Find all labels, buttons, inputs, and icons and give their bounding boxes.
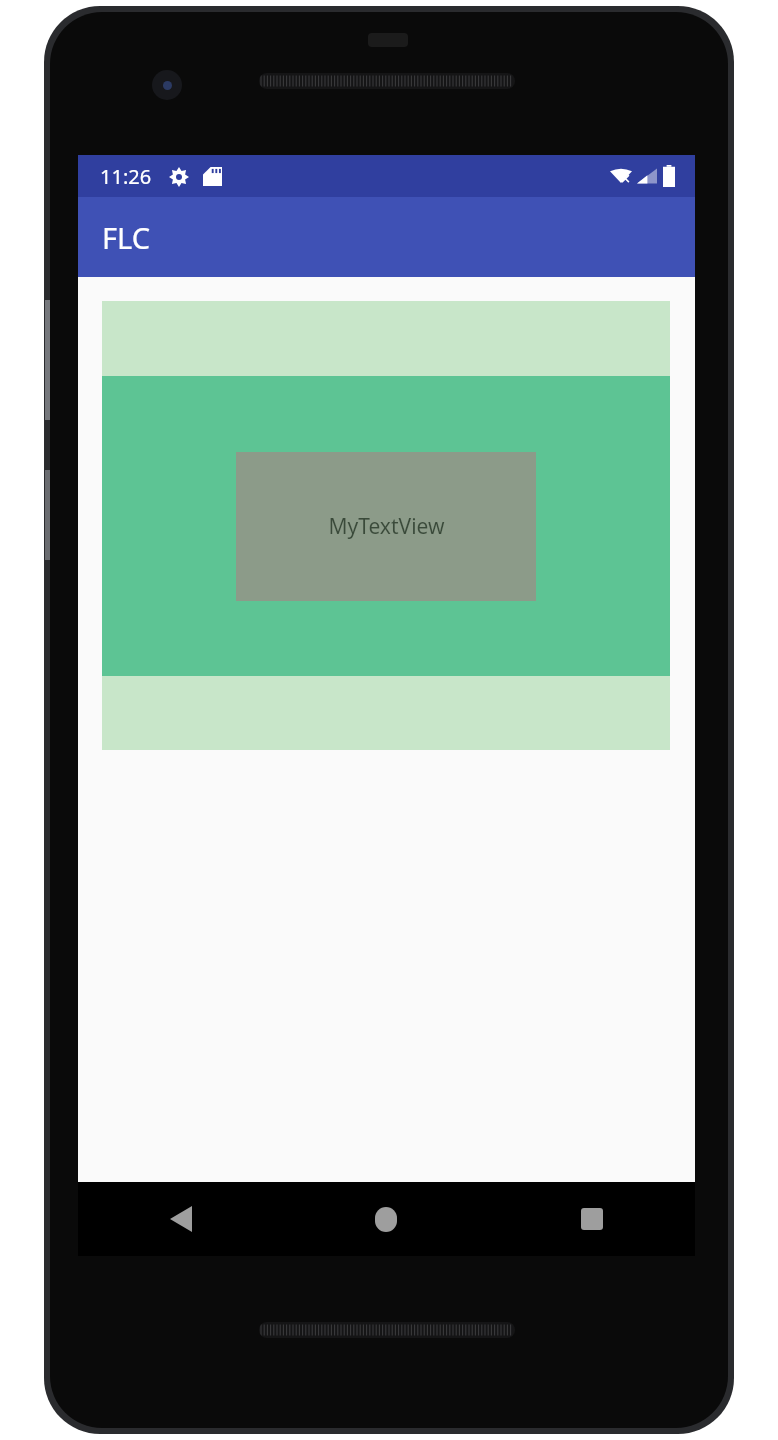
button[interactable]: Back — [78, 1182, 283, 1256]
button[interactable]: MyTextView — [236, 452, 536, 601]
button[interactable]: Home — [283, 1182, 489, 1256]
button[interactable]: Recent apps — [489, 1182, 695, 1256]
staticText: 11:26 — [100, 163, 152, 190]
staticText: MyTextView — [328, 512, 445, 541]
staticText: FLC — [102, 218, 150, 257]
